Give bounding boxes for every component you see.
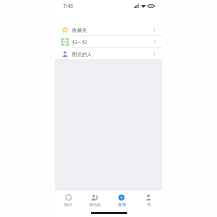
staticText: 扫一扫 (72, 39, 87, 45)
button[interactable]: 附近的人 (55, 48, 162, 59)
button[interactable]: 扫一扫 (55, 36, 162, 48)
staticText: 7:43 (63, 3, 73, 10)
button[interactable]: 收藏夹 (55, 24, 162, 36)
staticText: 收藏夹 (72, 27, 87, 33)
staticText: 微信 (64, 202, 72, 207)
staticText: 我 (147, 202, 151, 207)
button[interactable]: 发现 (108, 190, 135, 210)
staticText: 发现 (118, 202, 126, 207)
staticText: 通讯录 (89, 202, 101, 207)
button[interactable]: 通讯录 (81, 190, 108, 210)
staticText: 附近的人 (72, 51, 92, 57)
button[interactable]: 微信 (55, 190, 81, 210)
button[interactable]: 我 (135, 190, 162, 210)
